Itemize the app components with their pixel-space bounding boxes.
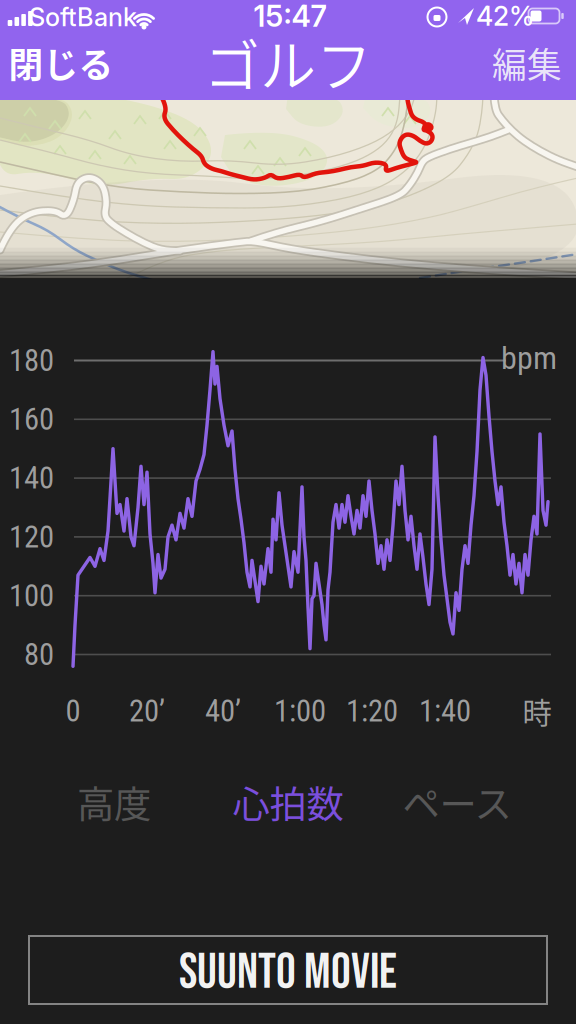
staticText: 80: [24, 636, 54, 672]
staticText: 閉じる: [8, 38, 113, 88]
staticText: 120: [9, 519, 54, 555]
staticText: bpm: [501, 339, 557, 377]
button[interactable]: 心拍数: [232, 775, 343, 829]
staticText: 100: [9, 578, 54, 614]
staticText: 1:40: [419, 693, 471, 729]
staticText: 42%: [476, 0, 534, 32]
button[interactable]: 閉じる: [8, 38, 113, 88]
staticText: 40’: [205, 693, 241, 729]
staticText: 高度: [77, 775, 151, 829]
staticText: 時: [522, 690, 551, 732]
staticText: ペース: [402, 775, 511, 829]
button[interactable]: SUUNTO MOVIE: [29, 936, 547, 1004]
staticText: 20’: [129, 693, 165, 729]
staticText: 15:47: [253, 0, 326, 34]
staticText: 1:20: [346, 693, 398, 729]
staticText: ゴルフ: [204, 21, 372, 103]
staticText: 編集: [492, 38, 562, 88]
staticText: SUUNTO MOVIE: [179, 943, 397, 1003]
button[interactable]: 編集: [492, 38, 562, 88]
staticText: 0: [65, 693, 80, 729]
staticText: 180: [9, 342, 54, 378]
staticText: SoftBank: [29, 2, 137, 32]
staticText: 160: [9, 401, 54, 437]
staticText: 心拍数: [232, 775, 343, 829]
staticText: 140: [9, 460, 54, 496]
button[interactable]: ペース: [402, 775, 511, 829]
button[interactable]: 高度: [77, 775, 151, 829]
staticText: 1:00: [274, 693, 326, 729]
